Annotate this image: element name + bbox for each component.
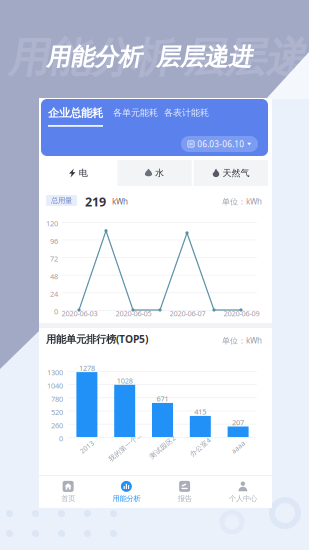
staticText: 780 (51, 394, 63, 402)
button[interactable]: 用能分析 (97, 476, 155, 508)
staticText: 各表计能耗 (164, 107, 209, 118)
staticText: 我的第一个... (105, 442, 145, 451)
staticText: 24 (50, 289, 58, 297)
staticText: 总用量 (51, 196, 72, 205)
button[interactable]: 电 (41, 160, 115, 186)
staticText: 2020-06-03 (61, 308, 97, 318)
button[interactable]: 06.03-06.10 (181, 136, 258, 152)
staticText: 1040 (47, 381, 63, 389)
staticText: 2020-06-09 (223, 308, 259, 318)
staticText: 各单元能耗 (113, 107, 158, 118)
button[interactable]: 各单元能耗 (113, 107, 159, 118)
staticText: 办公室4 (188, 442, 213, 452)
staticText: 1028 (117, 376, 133, 386)
staticText: 1278 (79, 363, 95, 373)
button[interactable]: 报告 (155, 476, 214, 508)
staticText: 520 (51, 407, 63, 415)
staticText: 207 (232, 417, 244, 427)
staticText: 用能分析 层层递进 (6, 32, 309, 84)
staticText: 0 (59, 433, 63, 441)
staticText: 96 (50, 236, 58, 244)
staticText: 用能分析 (112, 494, 140, 503)
staticText: 个人中心 (229, 494, 257, 503)
staticText: 用能分析 层层递进 (47, 42, 253, 72)
staticText: 电 (79, 167, 88, 179)
staticText: 单位：kWh (222, 335, 262, 345)
staticText: 219 (85, 193, 106, 207)
staticText: 用能单元排行榜(TOP5) (46, 332, 148, 345)
button[interactable]: 首页 (39, 476, 97, 508)
staticText: 天然气 (222, 167, 249, 179)
staticText: aaaa (230, 442, 246, 452)
staticText: 671 (156, 394, 168, 404)
staticText: 1300 (47, 367, 63, 375)
staticText: 企业总能耗 (48, 106, 103, 118)
staticText: 2020-06-05 (115, 308, 151, 318)
staticText: 2013 (79, 442, 95, 452)
button[interactable]: 水 (117, 160, 192, 186)
staticText: 72 (50, 254, 58, 262)
staticText: 260 (51, 420, 63, 428)
staticText: kWh (112, 196, 128, 206)
staticText: 2020-06-07 (169, 308, 205, 318)
staticText: 水 (155, 167, 164, 179)
button[interactable]: 企业总能耗 (48, 106, 106, 118)
button[interactable]: 个人中心 (214, 476, 272, 508)
button[interactable]: 天然气 (194, 160, 268, 186)
staticText: 报告 (178, 494, 192, 503)
staticText: 48 (50, 271, 58, 279)
staticText: 单位：kWh (222, 196, 262, 206)
button[interactable]: 各表计能耗 (164, 107, 210, 118)
staticText: 415 (194, 407, 206, 417)
staticText: 首页 (61, 494, 75, 503)
staticText: 120 (46, 218, 58, 226)
staticText: 0 (54, 306, 58, 314)
staticText: 06.03-06.10 (197, 138, 244, 150)
staticText: 测试园区2 (146, 442, 178, 452)
